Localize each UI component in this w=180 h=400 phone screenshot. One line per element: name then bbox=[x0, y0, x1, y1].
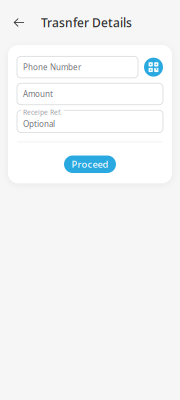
staticText: Receipe Ref. bbox=[23, 108, 62, 117]
staticText: Optional bbox=[23, 119, 55, 129]
button[interactable]: Optional bbox=[17, 110, 163, 132]
staticText: Proceed bbox=[71, 158, 108, 170]
staticText: Trasnfer Details bbox=[41, 14, 132, 30]
button[interactable]: Back bbox=[12, 13, 25, 31]
staticText: Amount bbox=[23, 89, 53, 99]
button[interactable]: Phone Number bbox=[17, 56, 138, 78]
button[interactable]: Amount bbox=[17, 83, 163, 105]
button[interactable]: Proceed bbox=[64, 155, 116, 173]
button[interactable]: Scan QR code bbox=[144, 58, 163, 77]
staticText: Phone Number bbox=[23, 62, 81, 72]
